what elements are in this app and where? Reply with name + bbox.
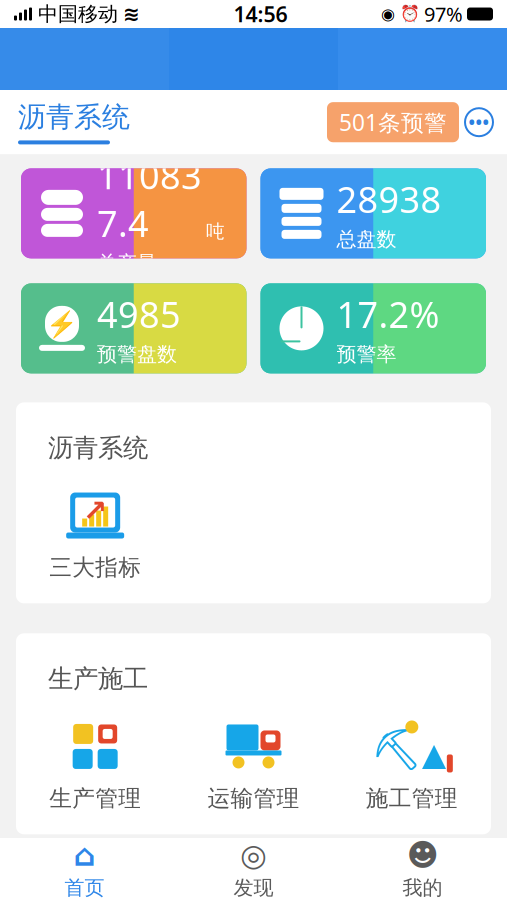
staticText: ≋ [123, 3, 140, 25]
button[interactable]: ↗ [16, 485, 174, 585]
staticText: 14:56 [233, 0, 287, 28]
button[interactable]: 501条预警 [327, 102, 459, 142]
button[interactable]: 17.2% [260, 283, 486, 373]
staticText: 总盘数 [336, 227, 396, 252]
staticText: 生产施工 [48, 663, 148, 694]
staticText: ⛏ [371, 727, 422, 772]
staticText: 总产量 [97, 251, 157, 275]
staticText: 首页 [64, 876, 104, 900]
staticText: 沥青系统 [48, 432, 148, 463]
staticText: ▲ [422, 736, 447, 772]
button[interactable]: ◎ [169, 832, 338, 900]
staticText: ☻ [406, 838, 438, 873]
staticText: ⚡ [46, 309, 78, 338]
button[interactable]: 生产管理 [16, 716, 174, 816]
staticText: 吨 [206, 220, 225, 243]
button[interactable]: 110837.4 [21, 168, 246, 258]
staticText: 预警率 [336, 342, 396, 367]
staticText: 我的 [402, 876, 442, 900]
button[interactable]: 消息 [459, 102, 499, 142]
staticText: 沥青系统 [18, 100, 130, 134]
staticText: 预警盘数 [97, 342, 177, 367]
staticText: 28938 [336, 175, 441, 223]
staticText: 110837.4 [97, 151, 202, 247]
staticText: 中国移动 [38, 2, 118, 26]
button[interactable]: 28938 [260, 168, 486, 258]
staticText: ••• [468, 111, 489, 134]
staticText: 运输管理 [207, 784, 299, 812]
staticText: ↗ [83, 494, 108, 527]
button[interactable]: 沥青系统 [0, 100, 130, 144]
staticText: ⏰ [400, 5, 420, 23]
staticText: ◎ [240, 838, 267, 873]
staticText: 17.2% [336, 290, 439, 338]
button[interactable]: 运输管理 [174, 716, 333, 816]
staticText: 施工管理 [366, 784, 458, 812]
staticText: 97% [424, 1, 463, 27]
button[interactable]: ☻ [338, 832, 507, 900]
staticText: 501条预警 [339, 107, 447, 137]
staticText: 三大指标 [49, 553, 141, 581]
staticText: 生产管理 [49, 784, 141, 812]
staticText: ◉ [381, 5, 395, 23]
button[interactable]: ⚡ [21, 283, 246, 373]
staticText: ⌂ [73, 838, 95, 873]
button[interactable]: ⌂ [0, 832, 169, 900]
staticText: 4985 [97, 290, 181, 338]
button[interactable]: ⛏ [333, 716, 491, 816]
staticText: 发现 [233, 876, 273, 900]
